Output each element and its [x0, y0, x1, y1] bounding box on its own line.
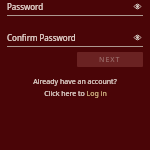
staticText: Password: [7, 1, 132, 12]
button[interactable]: Already have an account?: [7, 77, 143, 99]
staticText: Click here to Log in: [44, 89, 107, 99]
staticText: NEXT: [99, 55, 121, 65]
button[interactable]: Toggle password visibility: [132, 1, 143, 12]
staticText: Confirm Password: [7, 32, 132, 43]
button[interactable]: NEXT: [77, 52, 143, 67]
button[interactable]: Toggle confirm password visibility: [132, 32, 143, 43]
staticText: Already have an account?: [33, 77, 117, 87]
